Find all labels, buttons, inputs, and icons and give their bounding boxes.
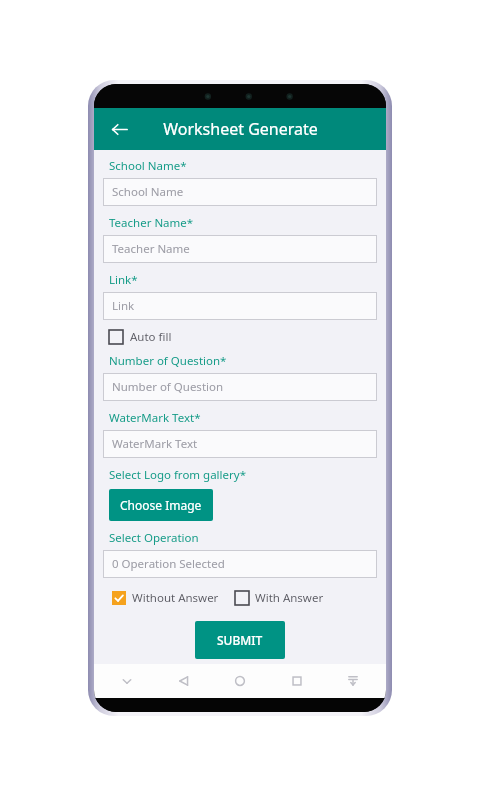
staticText: School Name bbox=[112, 184, 184, 200]
staticText: Teacher Name bbox=[112, 241, 190, 257]
button[interactable]: Recents bbox=[276, 666, 318, 696]
button[interactable]: With Answer bbox=[233, 588, 326, 608]
staticText: Worksheet Generate bbox=[163, 118, 318, 140]
button[interactable]: Link bbox=[103, 292, 377, 320]
staticText: Number of Question bbox=[112, 379, 224, 395]
staticText: WaterMark Text* bbox=[109, 410, 201, 426]
staticText: School Name* bbox=[109, 158, 187, 174]
staticText: Teacher Name* bbox=[109, 215, 194, 231]
staticText: SUBMIT bbox=[217, 632, 263, 648]
button[interactable]: School Name bbox=[103, 178, 377, 206]
staticText: WaterMark Text bbox=[112, 436, 198, 452]
staticText: 0 Operation Selected bbox=[112, 556, 225, 572]
staticText: Without Answer bbox=[132, 590, 219, 606]
button[interactable]: Hide keyboard bbox=[106, 666, 148, 696]
staticText: Auto fill bbox=[130, 329, 172, 345]
button[interactable]: Auto fill bbox=[103, 327, 178, 347]
button[interactable]: Home bbox=[219, 666, 261, 696]
button[interactable]: WaterMark Text bbox=[103, 430, 377, 458]
button[interactable]: Teacher Name bbox=[103, 235, 377, 263]
staticText: Select Operation bbox=[109, 530, 199, 546]
staticText: Select Logo from gallery* bbox=[109, 467, 246, 483]
button[interactable]: Without Answer bbox=[110, 588, 221, 608]
staticText: With Answer bbox=[255, 590, 324, 606]
staticText: Link* bbox=[109, 272, 138, 288]
staticText: Choose Image bbox=[120, 497, 202, 513]
button[interactable]: Collapse bbox=[332, 666, 374, 696]
button[interactable]: Back bbox=[102, 112, 136, 146]
staticText: Number of Question* bbox=[109, 353, 227, 369]
staticText: Link bbox=[112, 298, 135, 314]
button[interactable]: SUBMIT bbox=[195, 621, 285, 659]
button[interactable]: Back bbox=[163, 666, 205, 696]
button[interactable]: 0 Operation Selected bbox=[103, 550, 377, 578]
button[interactable]: Choose Image bbox=[109, 489, 213, 521]
button[interactable]: Number of Question bbox=[103, 373, 377, 401]
